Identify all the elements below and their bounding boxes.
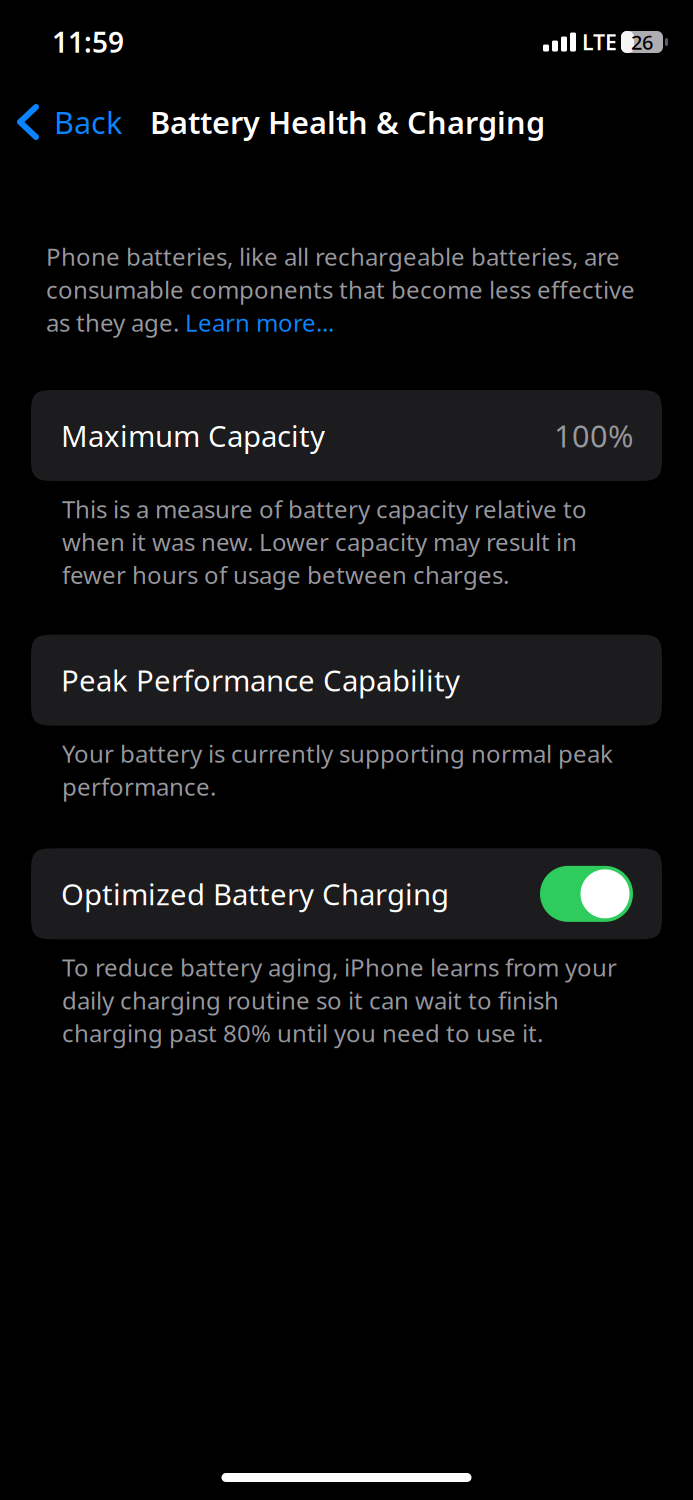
staticText: To reduce battery aging, iPhone learns f… — [62, 951, 617, 1049]
button[interactable]: Optimized Battery Charging — [540, 866, 633, 922]
button[interactable]: Learn more... — [185, 307, 334, 338]
staticText: 11:59 — [52, 23, 124, 61]
staticText: Your battery is currently supporting nor… — [62, 738, 613, 802]
staticText: 26 — [631, 29, 653, 55]
staticText: consumable components that become less e… — [46, 274, 635, 305]
staticText: as they age. — [46, 307, 185, 338]
staticText: Phone batteries, like all rechargeable b… — [46, 241, 620, 272]
staticText: Battery Health & Charging — [150, 102, 545, 142]
staticText: Peak Performance Capability — [61, 661, 460, 700]
staticText: Optimized Battery Charging — [61, 874, 449, 913]
staticText: Back — [54, 102, 122, 142]
staticText: 100% — [554, 415, 633, 456]
button[interactable]: Peak Performance Capability — [0, 635, 693, 726]
staticText: LTE — [582, 28, 617, 56]
button[interactable]: Back — [0, 92, 128, 152]
staticText: This is a measure of battery capacity re… — [62, 493, 587, 591]
staticText: Learn more... — [185, 307, 334, 338]
staticText: Maximum Capacity — [61, 416, 325, 455]
